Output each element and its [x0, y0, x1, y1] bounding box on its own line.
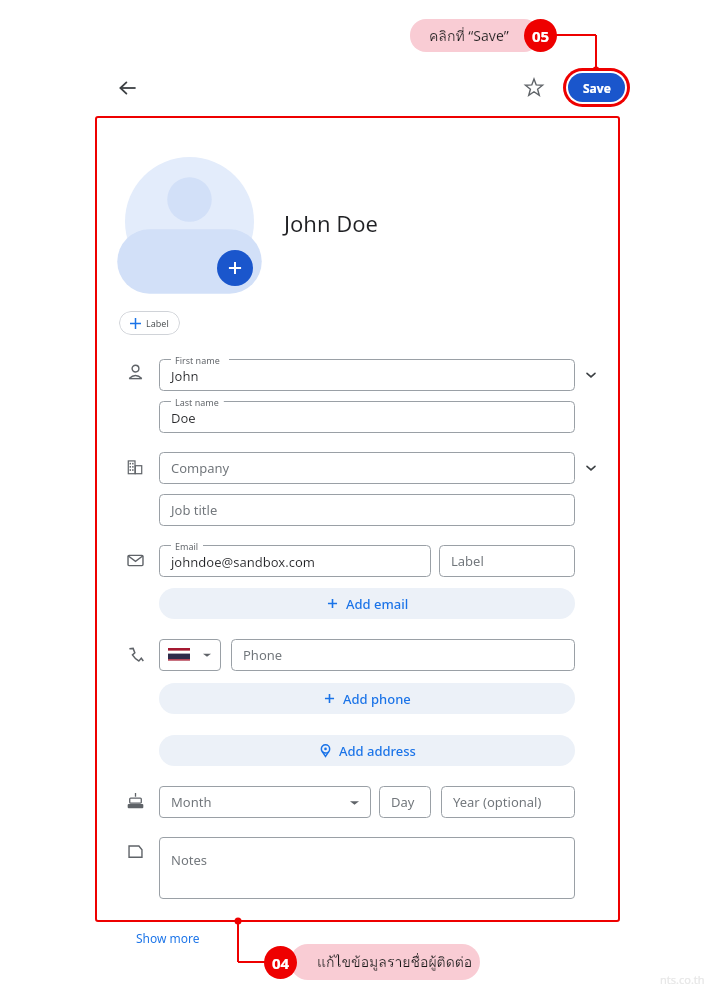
staticText: johndoe@sandbox.com — [171, 553, 315, 571]
staticText: Month — [171, 793, 212, 811]
button[interactable]: แก้ไขข้อมูลรายชื่อผู้ติดต่อ — [290, 944, 480, 980]
staticText: John — [171, 367, 199, 385]
button[interactable]: Expand — [583, 460, 599, 476]
button[interactable]: Day — [379, 786, 431, 818]
staticText: Save — [583, 80, 611, 96]
staticText: คลิกที่ “Save” — [429, 25, 509, 47]
staticText: nts.co.th — [660, 972, 705, 987]
staticText: Notes — [171, 851, 207, 869]
staticText: 05 — [532, 26, 550, 46]
button[interactable]: Add address — [159, 735, 575, 766]
button[interactable]: Last name — [159, 401, 575, 433]
button[interactable]: Country code — [159, 639, 221, 671]
button[interactable]: Save — [568, 73, 625, 102]
staticText: First name — [175, 354, 220, 366]
staticText: Company — [171, 459, 230, 477]
staticText: Show more — [136, 930, 200, 946]
button[interactable]: Label — [439, 545, 575, 577]
staticText: แก้ไขข้อมูลรายชื่อผู้ติดต่อ — [317, 951, 473, 973]
button[interactable]: Job title — [159, 494, 575, 526]
staticText: Last name — [175, 396, 219, 408]
button[interactable]: First name — [159, 359, 575, 391]
button[interactable]: Email — [159, 545, 431, 577]
button[interactable]: Year (optional) — [441, 786, 575, 818]
button[interactable]: Month — [159, 786, 371, 818]
staticText: Email — [175, 540, 199, 552]
staticText: Add email — [346, 595, 409, 613]
button[interactable]: คลิกที่ “Save” — [410, 19, 540, 52]
button[interactable]: Company — [159, 452, 575, 484]
button[interactable]: Change photo — [217, 250, 253, 286]
staticText: Doe — [171, 409, 196, 427]
button[interactable]: Add email — [159, 588, 575, 619]
staticText: Add address — [339, 742, 416, 760]
staticText: Phone — [243, 646, 283, 664]
staticText: Year (optional) — [453, 793, 542, 811]
staticText: 04 — [272, 953, 290, 973]
button[interactable]: Phone — [231, 639, 575, 671]
staticText: Label — [451, 552, 484, 570]
staticText: Label — [146, 317, 169, 329]
button[interactable]: Add phone — [159, 683, 575, 714]
button[interactable]: 04 — [264, 946, 297, 979]
staticText: John Doe — [284, 208, 379, 238]
staticText: Add phone — [343, 690, 411, 708]
button[interactable]: Notes — [159, 837, 575, 899]
staticText: Day — [391, 793, 415, 811]
button[interactable]: Favorite — [518, 72, 550, 104]
button[interactable]: Label — [119, 311, 180, 335]
button[interactable]: Back — [110, 70, 146, 106]
button[interactable]: 05 — [524, 19, 557, 52]
button[interactable]: Expand — [583, 367, 599, 383]
staticText: Job title — [171, 501, 218, 519]
button[interactable]: Show more — [130, 927, 206, 949]
